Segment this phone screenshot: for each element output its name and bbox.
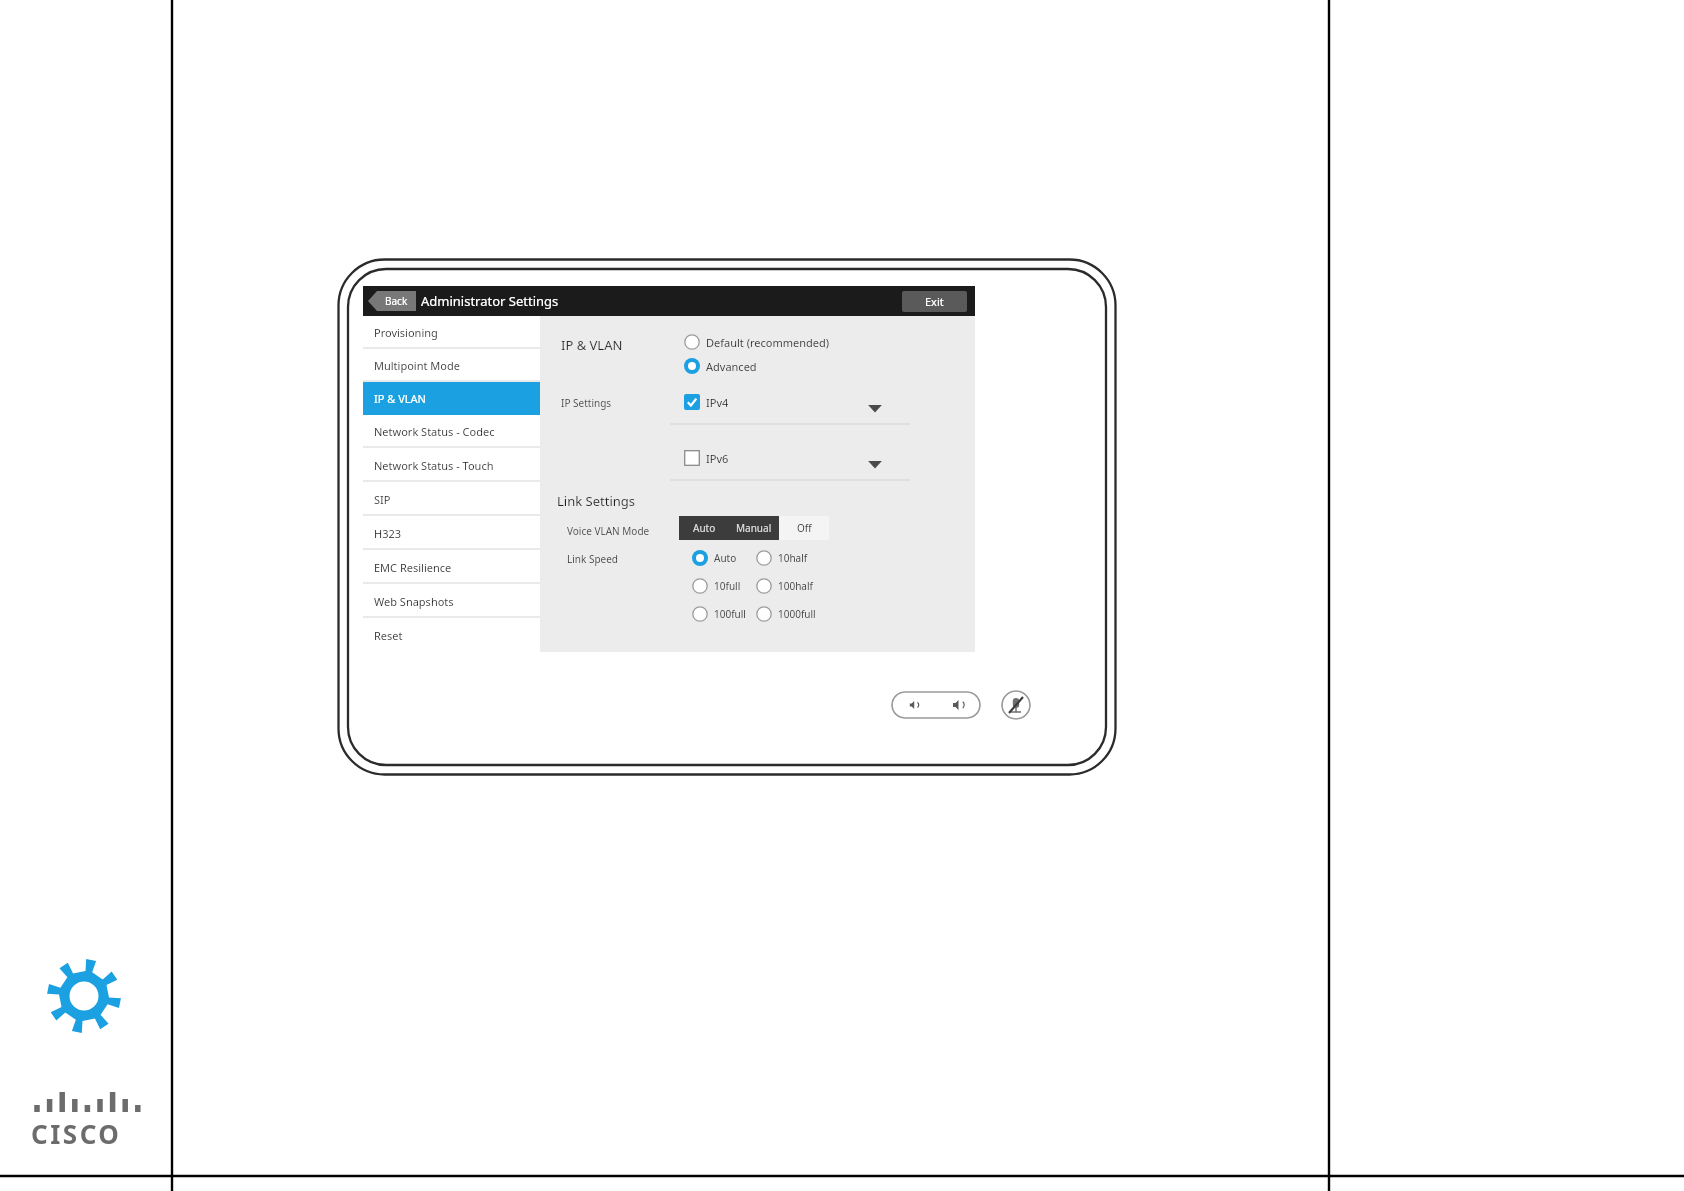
button[interactable]: Expand — [866, 399, 884, 417]
staticText: IP & VLAN — [561, 336, 623, 354]
button[interactable]: 10full — [692, 578, 741, 594]
staticText: 10half — [778, 551, 808, 565]
button[interactable]: IPv6 — [684, 450, 729, 466]
staticText: SIP — [374, 492, 391, 507]
button[interactable]: Auto — [679, 516, 729, 540]
button[interactable]: EMC Resilience — [363, 550, 540, 584]
button[interactable]: 100half — [756, 578, 813, 594]
staticText: Voice VLAN Mode — [567, 524, 650, 538]
staticText: Reset — [374, 628, 403, 643]
staticText: IP Settings — [561, 396, 612, 410]
button[interactable]: Reset — [363, 618, 540, 652]
button[interactable]: IP & VLAN — [363, 382, 540, 415]
staticText: Off — [797, 521, 812, 535]
button[interactable]: Volume — [891, 691, 981, 719]
staticText: Web Snapshots — [374, 594, 454, 609]
button[interactable]: IPv4 — [684, 394, 729, 410]
staticText: Auto — [693, 521, 716, 535]
staticText: Exit — [925, 294, 944, 309]
staticText: IPv6 — [706, 451, 729, 466]
staticText: Advanced — [706, 359, 757, 374]
button[interactable]: Mute microphone — [1001, 690, 1031, 720]
button[interactable]: 100full — [692, 606, 746, 622]
button[interactable]: Multipoint Mode — [363, 349, 540, 382]
staticText: Multipoint Mode — [374, 358, 460, 373]
button[interactable]: 10half — [756, 550, 808, 566]
button[interactable]: Advanced — [684, 358, 757, 374]
button[interactable]: Default (recommended) — [684, 334, 830, 350]
staticText: Administrator Settings — [421, 292, 559, 310]
button[interactable]: Provisioning — [363, 316, 540, 349]
button[interactable]: Exit — [902, 291, 967, 312]
staticText: Link Settings — [557, 492, 635, 510]
staticText: IPv4 — [706, 395, 729, 410]
staticText: EMC Resilience — [374, 560, 452, 575]
staticText: 100half — [778, 579, 813, 593]
staticText: Manual — [736, 521, 772, 535]
button[interactable]: SIP — [363, 482, 540, 516]
staticText: IP & VLAN — [374, 391, 426, 406]
button[interactable]: Web Snapshots — [363, 584, 540, 618]
staticText: Link Speed — [567, 552, 619, 566]
staticText: Back — [385, 294, 408, 308]
staticText: H323 — [374, 526, 402, 541]
button[interactable]: Network Status - Touch — [363, 448, 540, 482]
button[interactable]: Manual — [729, 516, 779, 540]
staticText: 1000full — [778, 607, 816, 621]
button[interactable]: Network Status - Codec — [363, 415, 540, 448]
button[interactable]: Off — [779, 516, 829, 540]
button[interactable]: 1000full — [756, 606, 816, 622]
staticText: Network Status - Codec — [374, 424, 495, 439]
button[interactable]: H323 — [363, 516, 540, 550]
staticText: Default (recommended) — [706, 335, 830, 350]
button[interactable]: Expand — [866, 455, 884, 473]
staticText: CISCO — [31, 1116, 122, 1151]
button[interactable]: Auto — [692, 550, 737, 566]
button[interactable]: Back — [368, 291, 416, 311]
staticText: 100full — [714, 607, 746, 621]
staticText: Provisioning — [374, 325, 438, 340]
staticText: 10full — [714, 579, 741, 593]
staticText: Auto — [714, 551, 737, 565]
staticText: Network Status - Touch — [374, 458, 494, 473]
